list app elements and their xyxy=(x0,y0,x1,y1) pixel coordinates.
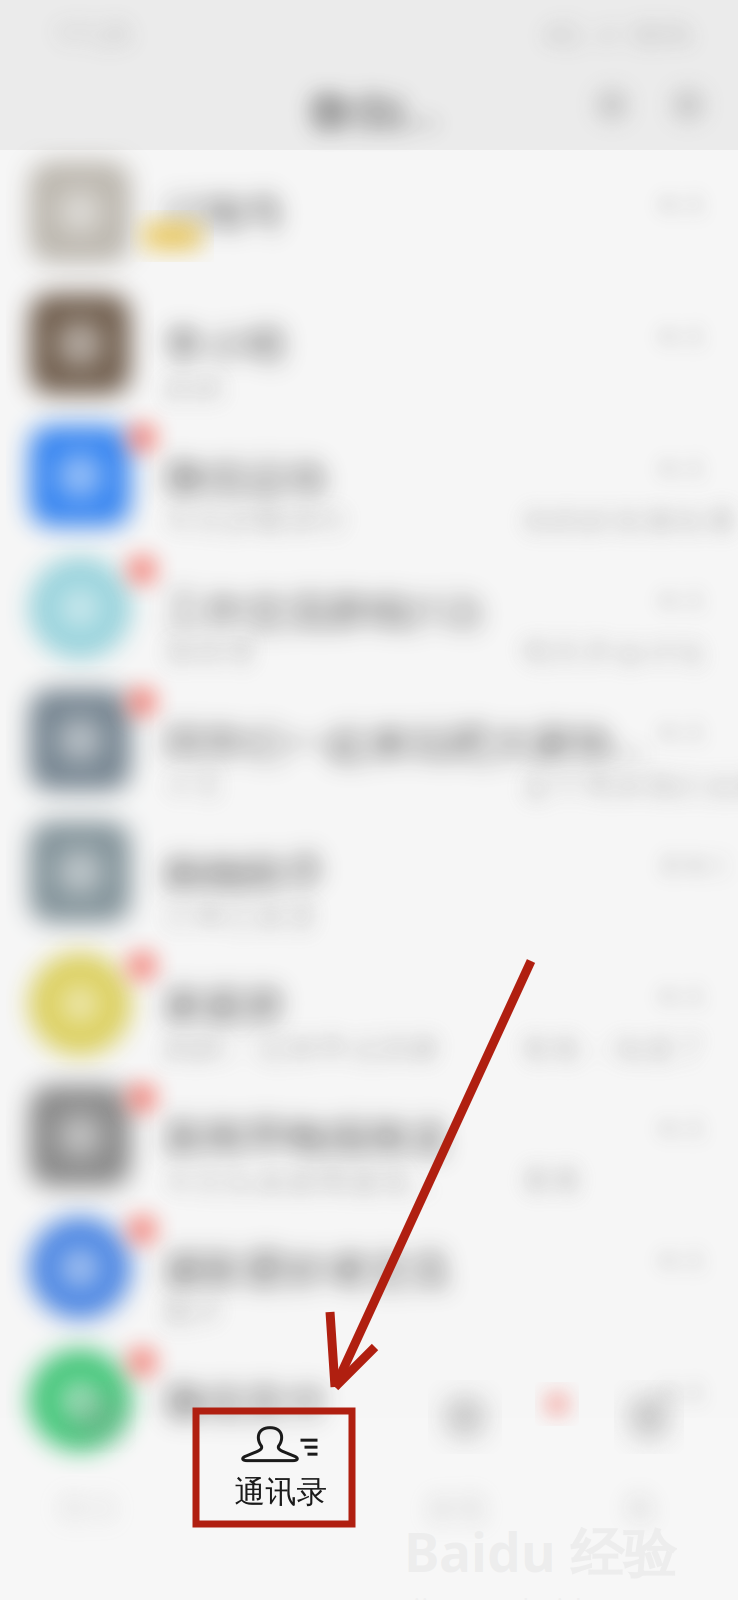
button[interactable]: 我 xyxy=(557,1398,738,1538)
staticText: Baidu 经验 xyxy=(404,1516,676,1587)
staticText: 通讯录 xyxy=(234,1473,327,1511)
button[interactable]: 微信 xyxy=(5,1398,189,1538)
button[interactable]: 发现 xyxy=(373,1398,557,1538)
button[interactable]: 通讯录 xyxy=(189,1398,373,1538)
